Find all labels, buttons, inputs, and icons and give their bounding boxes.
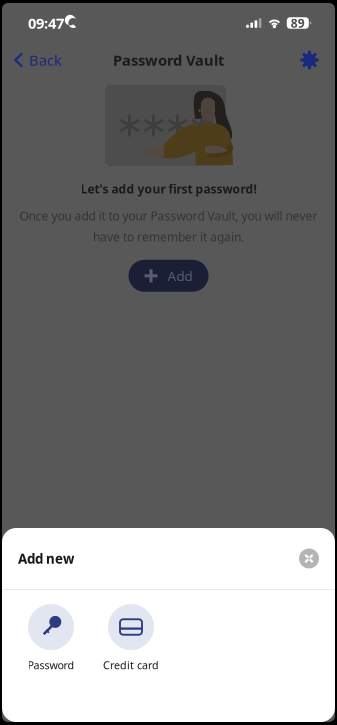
staticText: Add new xyxy=(18,550,74,567)
button[interactable]: Credit card xyxy=(91,604,171,672)
staticText: have to remember it again. xyxy=(93,229,244,245)
staticText: Password xyxy=(27,658,74,672)
staticText: 09:47 xyxy=(28,13,64,33)
staticText: 89 xyxy=(291,15,305,31)
button[interactable]: Settings xyxy=(290,43,335,76)
button[interactable]: Close xyxy=(298,547,320,569)
staticText: Credit card xyxy=(103,658,159,672)
button[interactable]: Password xyxy=(11,604,91,672)
staticText: Once you add it to your Password Vault, … xyxy=(19,208,317,224)
button[interactable]: Back xyxy=(2,43,70,77)
staticText: Let's add your first password! xyxy=(80,181,256,197)
staticText: Back xyxy=(29,50,62,70)
staticText: Password Vault xyxy=(113,50,224,70)
staticText: Add xyxy=(167,267,192,285)
button[interactable]: Add xyxy=(128,260,208,292)
